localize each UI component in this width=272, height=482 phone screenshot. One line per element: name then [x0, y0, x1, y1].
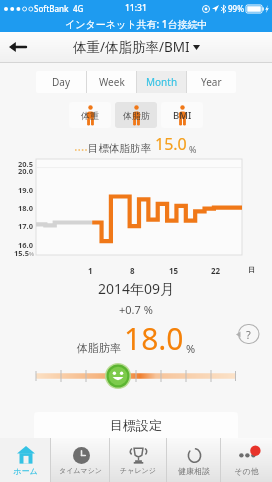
staticText: % — [29, 250, 34, 258]
staticText: 11:31 — [125, 2, 147, 14]
staticText: 18.0 — [18, 203, 33, 213]
staticText: 8 — [130, 265, 135, 276]
staticText: Year — [201, 75, 222, 89]
staticText: 体脂肪 — [123, 110, 150, 121]
staticText: BMI — [173, 109, 192, 122]
button[interactable]: 体脂肪 — [115, 102, 157, 128]
staticText: 体脂肪率 — [77, 341, 121, 355]
button[interactable]: チャレンジ — [110, 438, 166, 482]
staticText: 15.5 — [14, 248, 29, 258]
staticText: 15 — [169, 265, 179, 276]
staticText: Month — [146, 75, 178, 89]
staticText: その他 — [234, 466, 259, 476]
staticText: 2014年09月 — [98, 279, 175, 298]
staticText: 20.5 — [18, 159, 33, 169]
staticText: Day — [52, 75, 71, 89]
staticText: % — [189, 143, 197, 155]
button[interactable]: タイムマシン — [51, 438, 109, 482]
staticText: タイムマシン — [59, 466, 102, 475]
button[interactable]: Week — [87, 71, 136, 93]
button[interactable]: Help — [236, 324, 260, 344]
staticText: 15.0 — [155, 133, 187, 155]
staticText: 22 — [211, 265, 221, 276]
button[interactable]: 体重/体脂肪率/BMI — [73, 38, 200, 56]
staticText: 16.0 — [18, 240, 33, 250]
staticText: チャレンジ — [120, 466, 156, 475]
button[interactable]: 体重 — [69, 102, 111, 128]
button[interactable]: ホーム — [0, 438, 50, 482]
staticText: 体重/体脂肪率/BMI — [73, 38, 190, 56]
button[interactable]: Year — [187, 71, 236, 93]
button[interactable]: Day — [36, 71, 86, 93]
staticText: 目標体脂肪率 — [88, 142, 151, 155]
staticText: 目標設定 — [110, 417, 162, 433]
staticText: ホーム — [13, 466, 38, 476]
staticText: SoftBank — [34, 3, 69, 14]
staticText: % — [186, 341, 196, 356]
staticText: 99% — [228, 3, 244, 14]
staticText: インターネット共有: 1台接続中 — [65, 17, 208, 31]
staticText: 18.0 — [124, 318, 184, 359]
staticText: 19.0 — [18, 185, 33, 195]
staticText: 4G — [73, 3, 84, 14]
button[interactable]: Month — [137, 71, 186, 93]
staticText: 1 — [88, 265, 93, 276]
button[interactable]: その他 — [221, 438, 272, 482]
staticText: ? — [246, 327, 251, 342]
staticText: 日 — [248, 265, 255, 274]
staticText: Week — [99, 75, 125, 89]
button[interactable]: Back — [0, 32, 34, 62]
button[interactable]: 目標設定 — [34, 412, 238, 438]
staticText: 健康相談 — [178, 466, 210, 476]
staticText: 体重 — [81, 110, 99, 121]
staticText: +0.7 % — [119, 302, 153, 317]
button[interactable]: 健康相談 — [167, 438, 220, 482]
staticText: 17.0 — [18, 221, 33, 231]
staticText: 20.0 — [18, 166, 33, 176]
button[interactable]: BMI — [161, 102, 203, 128]
